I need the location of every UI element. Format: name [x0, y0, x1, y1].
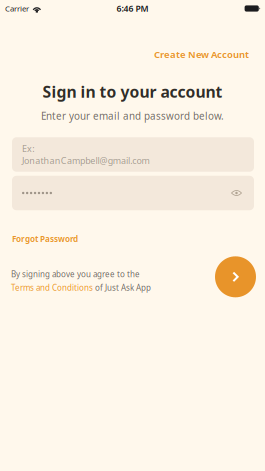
staticText: of Just Ask App [93, 282, 151, 293]
button[interactable]: Terms and Conditions [11, 282, 93, 293]
button[interactable]: Password [12, 176, 231, 210]
staticText: Forgot Password [12, 233, 78, 244]
button[interactable]: Forgot Password [12, 233, 78, 244]
button[interactable]: Continue [215, 256, 256, 297]
staticText: Enter your email and password below. [41, 109, 224, 123]
staticText: 6:46 PM [116, 3, 148, 14]
staticText: Carrier [5, 3, 29, 14]
button[interactable]: Ex: JonathanCampbell@gmail.com [12, 137, 254, 172]
staticText: Terms and Conditions [11, 282, 93, 293]
staticText: Ex: JonathanCampbell@gmail.com [22, 142, 149, 167]
button[interactable]: Create New Account [151, 45, 252, 64]
staticText: Sign in to your account [42, 81, 222, 102]
staticText: Create New Account [154, 48, 249, 61]
button[interactable]: Show password [231, 176, 259, 210]
staticText: By signing above you agree to the [11, 269, 140, 280]
